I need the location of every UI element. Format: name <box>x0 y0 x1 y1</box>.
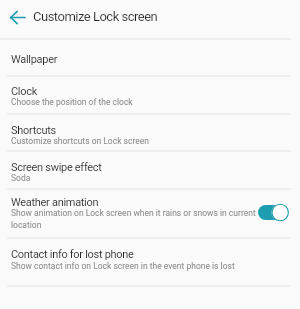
staticText: Show animation on Lock screen when it ra… <box>11 208 256 218</box>
staticText: Wallpaper <box>11 53 58 66</box>
button[interactable] <box>0 40 300 76</box>
button[interactable] <box>0 190 300 238</box>
staticText: location <box>11 220 42 230</box>
button[interactable] <box>0 115 300 151</box>
staticText: Weather animation <box>11 196 99 209</box>
staticText: Screen swipe effect <box>11 161 102 174</box>
button[interactable] <box>3 3 32 32</box>
staticText: Soda <box>11 173 31 183</box>
staticText: Contact info for lost phone <box>11 248 134 261</box>
staticText: Customize Lock screen <box>33 9 158 24</box>
staticText: Customize shortcuts on Lock screen <box>11 136 149 146</box>
staticText: Choose the position of the clock <box>11 97 133 107</box>
button[interactable] <box>0 152 300 189</box>
staticText: Show contact info on Lock screen in the … <box>11 261 235 271</box>
button[interactable] <box>0 77 300 114</box>
staticText: Clock <box>11 85 37 98</box>
staticText: Shortcuts <box>11 124 56 137</box>
button[interactable] <box>0 239 300 285</box>
button[interactable] <box>258 203 290 223</box>
